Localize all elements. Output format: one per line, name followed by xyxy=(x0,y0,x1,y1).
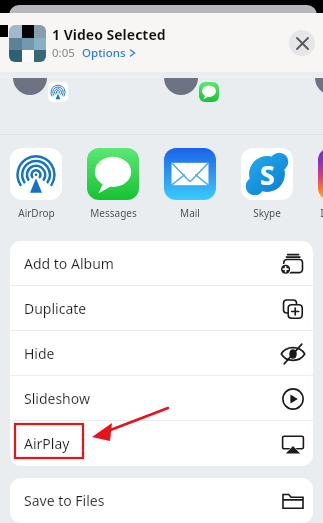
staticText: AirPlay xyxy=(24,434,70,453)
staticText: Hide xyxy=(24,344,55,363)
button[interactable]: Mail xyxy=(164,148,216,220)
staticText: Messages xyxy=(90,206,137,220)
staticText: S xyxy=(260,156,275,193)
staticText: AirDrop xyxy=(18,206,55,220)
button[interactable]: Hide xyxy=(10,331,313,376)
button[interactable]: AirDrop xyxy=(10,148,62,220)
staticText: Mail xyxy=(180,206,200,220)
button[interactable]: Save to Files xyxy=(10,478,313,523)
button[interactable]: Options xyxy=(82,45,126,61)
button[interactable]: Slideshow xyxy=(10,376,313,421)
staticText: Slideshow xyxy=(24,389,90,408)
button[interactable]: Messages xyxy=(87,148,139,220)
button[interactable]: Close xyxy=(289,30,315,56)
staticText: Add to Album xyxy=(24,254,114,273)
staticText: Skype xyxy=(253,206,281,220)
staticText: Duplicate xyxy=(24,299,87,318)
button[interactable]: S xyxy=(241,148,293,220)
staticText: Instagram xyxy=(320,206,323,220)
staticText: 0:05 xyxy=(52,45,75,61)
button[interactable]: Instagram xyxy=(318,148,323,220)
staticText: Save to Files xyxy=(24,491,105,510)
button[interactable]: AirPlay xyxy=(10,421,313,466)
button[interactable]: Add to Album xyxy=(10,241,313,286)
button[interactable]: Duplicate xyxy=(10,286,313,331)
staticText: 1 Video Selected xyxy=(52,25,166,44)
